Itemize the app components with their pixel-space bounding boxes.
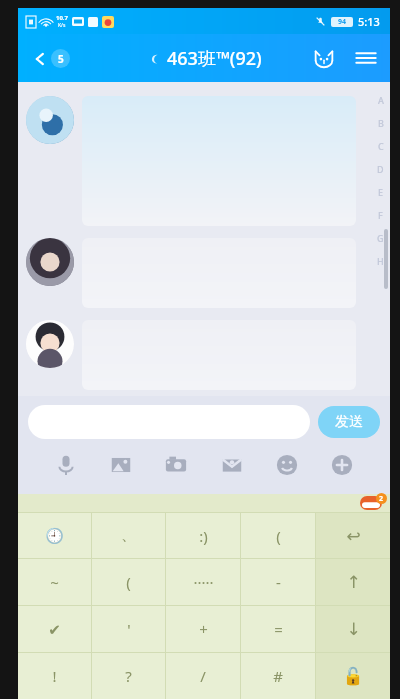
button[interactable]: Pet xyxy=(310,44,338,72)
staticText: 2 xyxy=(379,494,384,504)
staticText: H xyxy=(377,255,384,267)
button[interactable]: :) xyxy=(166,513,240,558)
staticText: 10.7 xyxy=(56,14,68,22)
staticText: ~ xyxy=(50,572,59,592)
staticText: ↩ xyxy=(346,526,361,546)
staticText: G xyxy=(377,232,384,244)
button[interactable]: ✔ xyxy=(18,606,91,652)
button[interactable]: Avatar xyxy=(26,238,74,286)
button[interactable]: ····· xyxy=(166,559,240,605)
button[interactable]: ↩ xyxy=(316,513,390,558)
button[interactable]: Mail xyxy=(215,448,249,482)
staticText: K/s xyxy=(58,22,66,29)
staticText: ↓ xyxy=(346,619,361,639)
staticText: # xyxy=(273,666,283,686)
button[interactable]: 463班™(92) xyxy=(143,42,266,75)
staticText: + xyxy=(199,619,208,639)
button[interactable] xyxy=(82,96,356,226)
staticText: 🕘 xyxy=(45,527,64,545)
button[interactable]: Avatar xyxy=(26,320,74,368)
staticText: ? xyxy=(125,666,132,686)
button[interactable]: = xyxy=(241,606,315,652)
button[interactable]: More xyxy=(325,448,359,482)
button[interactable]: Avatar xyxy=(26,96,74,144)
staticText: 94 xyxy=(338,17,347,27)
button[interactable]: ( xyxy=(241,513,315,558)
staticText: :) xyxy=(199,526,208,546)
staticText: / xyxy=(200,666,206,686)
button[interactable]: - xyxy=(241,559,315,605)
staticText: 463班™(92) xyxy=(167,46,262,71)
button[interactable]: + xyxy=(166,606,240,652)
button[interactable]: 发送 xyxy=(318,406,380,438)
staticText: C xyxy=(378,140,384,152)
button[interactable]: / xyxy=(166,653,240,699)
button[interactable]: Back xyxy=(28,45,74,72)
staticText: E xyxy=(378,186,384,198)
button[interactable]: 🕘 xyxy=(18,513,91,558)
button[interactable]: ? xyxy=(92,653,165,699)
staticText: 5 xyxy=(58,52,64,66)
staticText: B xyxy=(378,117,384,129)
button[interactable]: Voice xyxy=(49,448,83,482)
staticText: ✔ xyxy=(48,621,61,638)
staticText: D xyxy=(377,163,384,175)
staticText: ! xyxy=(52,666,57,686)
button[interactable]: ! xyxy=(18,653,91,699)
staticText: 发送 xyxy=(335,413,363,431)
staticText: 、 xyxy=(121,526,136,545)
button[interactable]: Emoji xyxy=(270,448,304,482)
button[interactable]: Menu xyxy=(352,44,380,72)
staticText: F xyxy=(378,209,383,221)
button[interactable]: ↑ xyxy=(316,559,390,605)
button[interactable]: Gallery xyxy=(104,448,138,482)
button[interactable]: ↓ xyxy=(316,606,390,652)
button[interactable]: ~ xyxy=(18,559,91,605)
staticText: ( xyxy=(276,526,281,546)
button[interactable]: ' xyxy=(92,606,165,652)
staticText: ····· xyxy=(193,572,214,592)
button[interactable]: 🔓 xyxy=(316,653,390,699)
staticText: 🔓 xyxy=(342,666,364,686)
button[interactable] xyxy=(28,405,310,439)
staticText: A xyxy=(378,94,384,106)
staticText: = xyxy=(274,619,283,639)
staticText: ↑ xyxy=(346,572,361,592)
staticText: - xyxy=(276,572,281,592)
button[interactable]: Camera xyxy=(159,448,193,482)
other: Back xyxy=(32,51,48,67)
staticText: ( xyxy=(126,572,131,592)
staticText: ' xyxy=(127,619,131,639)
button[interactable]: ( xyxy=(92,559,165,605)
staticText: 5:13 xyxy=(358,14,380,29)
button[interactable]: # xyxy=(241,653,315,699)
